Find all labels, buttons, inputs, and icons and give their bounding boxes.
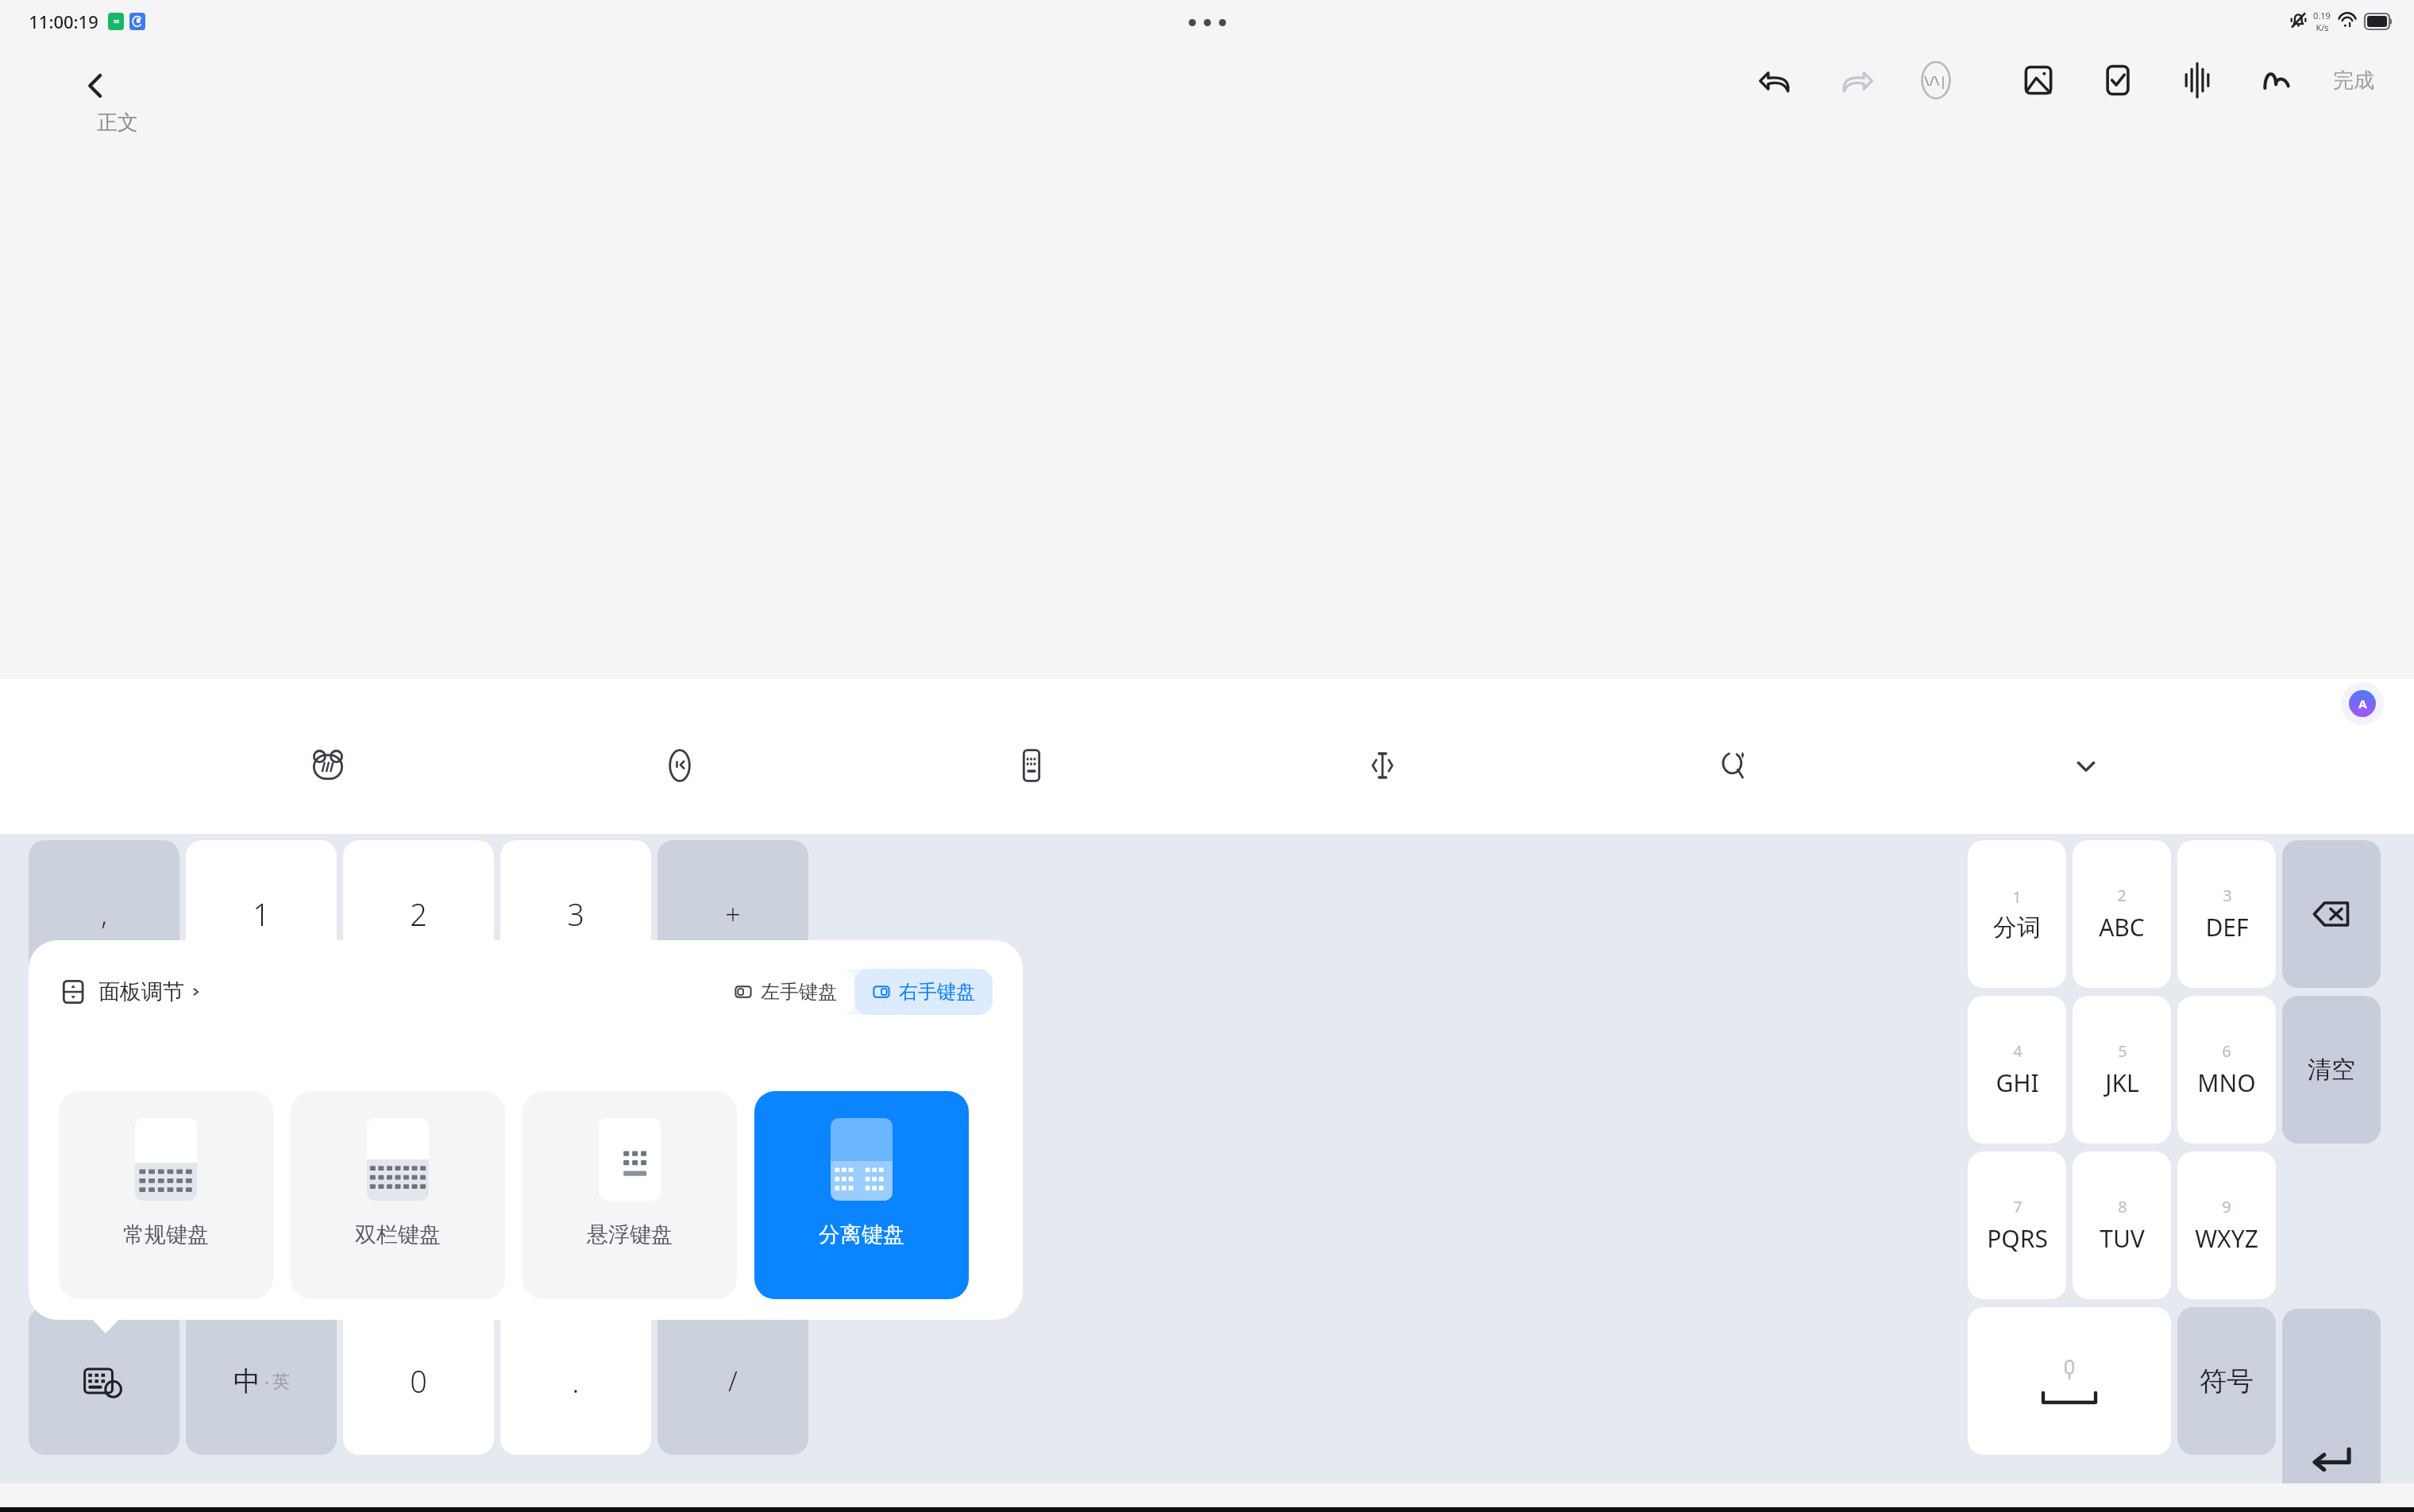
button[interactable]: Baidu input <box>304 742 352 789</box>
button[interactable] <box>29 1307 179 1455</box>
staticText: 完成 <box>2333 67 2374 94</box>
button[interactable]: 4 <box>186 996 337 1144</box>
button[interactable]: 中 <box>186 1307 337 1455</box>
button[interactable]: 7 <box>186 1151 337 1299</box>
button[interactable]: 7 <box>1968 1151 2066 1299</box>
button[interactable]: Back <box>73 64 118 108</box>
button[interactable]: 右手键盘 <box>854 969 993 1015</box>
button[interactable]: 分离键盘 <box>754 1091 969 1299</box>
staticText: PQRS <box>1987 1222 2048 1255</box>
staticText: = <box>725 1207 741 1244</box>
button[interactable]: 清空 <box>2282 996 2381 1144</box>
button[interactable]: Search <box>1710 742 1758 789</box>
button[interactable]: 9 <box>2177 1151 2276 1299</box>
button[interactable]: * <box>657 996 808 1144</box>
staticText: 1 <box>253 893 270 935</box>
button[interactable]: 左手键盘 <box>716 969 854 1015</box>
button[interactable]: 9 <box>500 1151 651 1299</box>
button[interactable]: AI <box>1911 56 1961 105</box>
staticText: GHI <box>1996 1066 2039 1099</box>
staticText: · <box>264 1370 269 1394</box>
button[interactable]: Checklist <box>2093 56 2142 105</box>
staticText: 2 <box>410 893 427 935</box>
button[interactable]: 3 <box>500 840 651 988</box>
button[interactable]: 8 <box>343 1151 494 1299</box>
button[interactable]: Keyboard layout <box>1008 742 1055 789</box>
staticText: MNO <box>2197 1066 2256 1099</box>
button[interactable]: 5 <box>2073 996 2171 1144</box>
button[interactable]: - <box>29 996 179 1144</box>
button[interactable]: 双栏键盘 <box>291 1091 505 1299</box>
staticText: 面板调节 <box>98 978 184 1005</box>
staticText: 符号 <box>2200 1364 2254 1398</box>
staticText: 双栏键盘 <box>355 1221 441 1248</box>
button[interactable]: Text cursor <box>1359 742 1406 789</box>
button[interactable]: 6 <box>2177 996 2276 1144</box>
staticText: 7 <box>2013 1196 2023 1217</box>
button[interactable]: + <box>657 840 808 988</box>
staticText: 5 <box>2118 1040 2127 1062</box>
button[interactable]: 2 <box>343 840 494 988</box>
button[interactable]: 5 <box>343 996 494 1144</box>
button[interactable]: 符号 <box>2177 1307 2276 1455</box>
button[interactable]: Voice <box>2173 56 2222 105</box>
button[interactable]: # <box>29 1151 179 1299</box>
staticText: 左手键盘 <box>761 980 837 1004</box>
staticText: 1 <box>2012 886 2022 908</box>
staticText: 4 <box>2013 1040 2023 1062</box>
button[interactable]: 悬浮键盘 <box>523 1091 737 1299</box>
staticText: K/s <box>2316 21 2329 33</box>
staticText: 中 <box>233 1364 260 1398</box>
button[interactable]: = <box>657 1151 808 1299</box>
staticText: DEF <box>2205 911 2249 943</box>
staticText: 英 <box>272 1371 290 1393</box>
button[interactable]: 8 <box>2073 1151 2171 1299</box>
button[interactable]: Redo <box>1832 56 1881 105</box>
button[interactable]: 6 <box>500 996 651 1144</box>
button[interactable]: . <box>500 1307 651 1455</box>
button[interactable]: 0 <box>343 1307 494 1455</box>
button[interactable]: 常规键盘 <box>59 1091 273 1299</box>
staticText: A <box>2358 696 2367 712</box>
button[interactable]: Emoji <box>656 742 704 789</box>
staticText: + <box>725 896 741 932</box>
staticText: ABC <box>2099 911 2145 943</box>
staticText: 8 <box>410 1205 427 1246</box>
button[interactable]: Space <box>1968 1307 2171 1455</box>
button[interactable]: Handwriting <box>2252 56 2301 105</box>
button[interactable]: 3 <box>2177 840 2276 988</box>
button[interactable]: Undo <box>1751 56 1800 105</box>
staticText: 正文 <box>97 110 138 136</box>
staticText: 2 <box>2117 885 2127 906</box>
button[interactable]: , <box>29 840 179 988</box>
staticText: 3 <box>2223 885 2232 906</box>
button[interactable]: Collapse keyboard <box>2062 742 2110 789</box>
button[interactable]: Insert image <box>2014 56 2063 105</box>
staticText: \/\| <box>1924 71 1947 90</box>
button[interactable]: 1 <box>1968 840 2066 988</box>
staticText: TUV <box>2100 1222 2145 1255</box>
staticText: 0 <box>410 1360 427 1402</box>
button[interactable]: 4 <box>1968 996 2066 1144</box>
button[interactable]: AI assistant <box>2341 682 2384 725</box>
button[interactable]: 2 <box>2073 840 2171 988</box>
staticText: 3 <box>567 893 584 935</box>
button[interactable]: / <box>657 1307 808 1455</box>
button[interactable]: 面板调节 <box>60 978 202 1006</box>
button[interactable]: Backspace <box>2282 840 2381 988</box>
button[interactable]: Enter <box>2282 1309 2381 1512</box>
button[interactable]: 完成 <box>2325 61 2382 100</box>
staticText: 分离键盘 <box>819 1221 904 1248</box>
staticText: 11:00:19 <box>29 10 98 33</box>
button[interactable]: 1 <box>186 840 337 988</box>
staticText: 分词 <box>1993 912 2041 943</box>
staticText: WXYZ <box>2195 1222 2258 1255</box>
